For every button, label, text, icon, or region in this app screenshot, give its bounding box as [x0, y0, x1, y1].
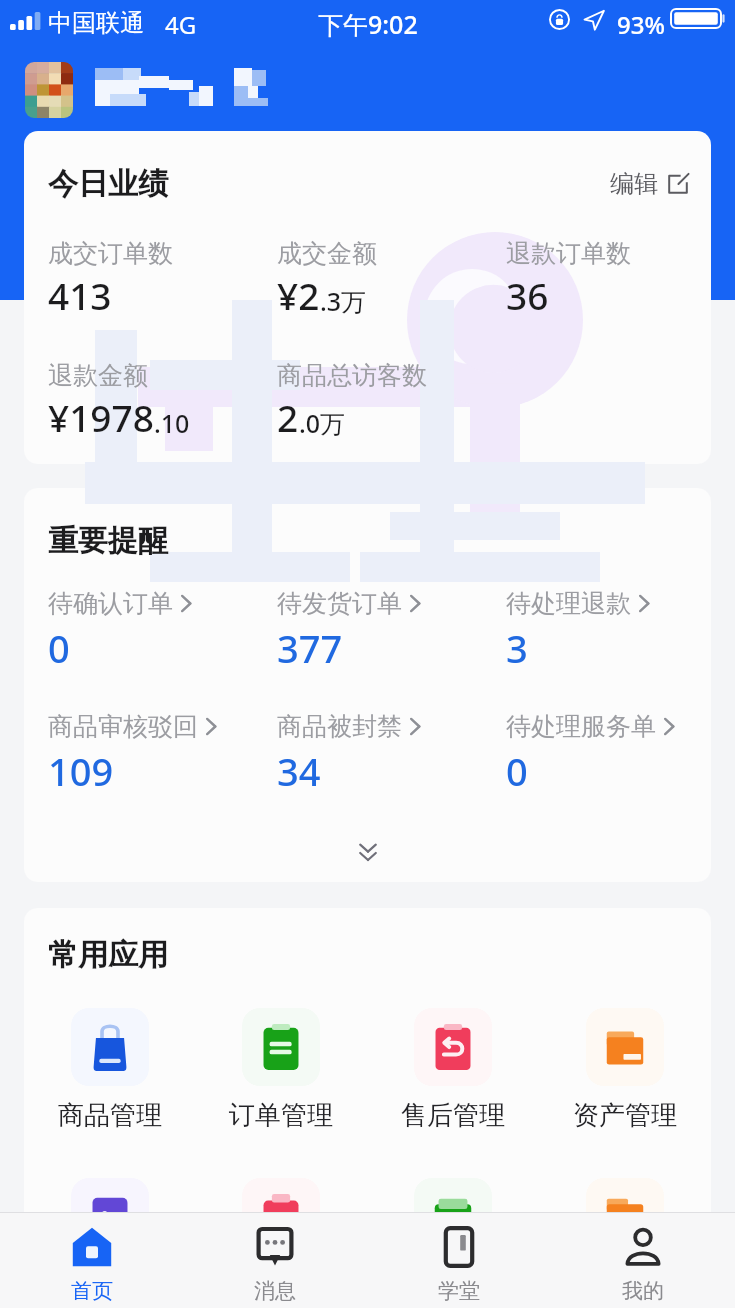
- staticText: 售后管理: [401, 1099, 505, 1132]
- button[interactable]: [539, 1178, 711, 1248]
- staticText: .10: [154, 406, 190, 440]
- staticText: 0: [48, 622, 70, 674]
- button[interactable]: 售后管理: [367, 1008, 539, 1132]
- staticText: 成交金额: [277, 238, 377, 269]
- button[interactable]: 我的: [551, 1213, 735, 1308]
- staticText: 下午9:02: [318, 7, 418, 41]
- button[interactable]: 待处理退款: [482, 588, 711, 674]
- staticText: 34: [277, 745, 321, 797]
- staticText: 商品总访客数: [277, 360, 427, 391]
- staticText: 待处理服务单: [506, 711, 656, 742]
- staticText: 编辑: [610, 169, 658, 199]
- staticText: 0: [506, 745, 528, 797]
- button[interactable]: 资产管理: [539, 1008, 711, 1132]
- staticText: 消息: [254, 1278, 296, 1304]
- button[interactable]: [367, 1178, 539, 1248]
- button[interactable]: 消息: [183, 1213, 367, 1308]
- staticText: 待处理退款: [506, 588, 631, 619]
- button[interactable]: 订单管理: [195, 1008, 367, 1132]
- staticText: 重要提醒: [48, 522, 168, 560]
- staticText: 36: [506, 270, 549, 320]
- staticText: 待发货订单: [277, 588, 402, 619]
- staticText: 4G: [165, 8, 197, 41]
- staticText: 我的: [622, 1278, 664, 1304]
- staticText: 常用应用: [48, 936, 168, 974]
- staticText: 商品被封禁: [277, 711, 402, 742]
- button[interactable]: [24, 1178, 195, 1248]
- button[interactable]: 待确认订单: [24, 588, 253, 674]
- button[interactable]: 展开更多: [24, 827, 711, 879]
- button[interactable]: 商品管理: [24, 1008, 195, 1132]
- staticText: 待确认订单: [48, 588, 173, 619]
- staticText: 93%: [617, 8, 665, 41]
- staticText: 商品审核驳回: [48, 711, 198, 742]
- staticText: .3万: [320, 284, 367, 318]
- staticText: 退款金额: [48, 360, 148, 391]
- staticText: 首页: [71, 1278, 113, 1304]
- staticText: 商品管理: [58, 1099, 162, 1132]
- button[interactable]: 编辑: [606, 165, 693, 203]
- button[interactable]: 学堂: [367, 1213, 551, 1308]
- button[interactable]: 待发货订单: [253, 588, 482, 674]
- staticText: 377: [277, 622, 343, 674]
- button[interactable]: 商品被封禁: [253, 711, 482, 797]
- staticText: ¥2: [277, 270, 320, 320]
- staticText: ¥1978: [48, 392, 154, 442]
- staticText: 订单管理: [229, 1099, 333, 1132]
- staticText: 退款订单数: [506, 238, 631, 269]
- button[interactable]: 商品审核驳回: [24, 711, 253, 797]
- staticText: 413: [48, 270, 112, 320]
- button[interactable]: 店铺头像: [25, 62, 73, 118]
- staticText: 今日业绩: [48, 165, 168, 203]
- staticText: 3: [506, 622, 528, 674]
- staticText: 2: [277, 392, 299, 442]
- staticText: 109: [48, 745, 114, 797]
- staticText: .0万: [299, 406, 346, 440]
- staticText: 资产管理: [573, 1099, 677, 1132]
- staticText: 成交订单数: [48, 238, 173, 269]
- button[interactable]: 待处理服务单: [482, 711, 711, 797]
- staticText: 学堂: [438, 1278, 480, 1304]
- button[interactable]: [195, 1178, 367, 1248]
- staticText: 中国联通: [48, 8, 144, 38]
- button[interactable]: 首页: [0, 1213, 183, 1308]
